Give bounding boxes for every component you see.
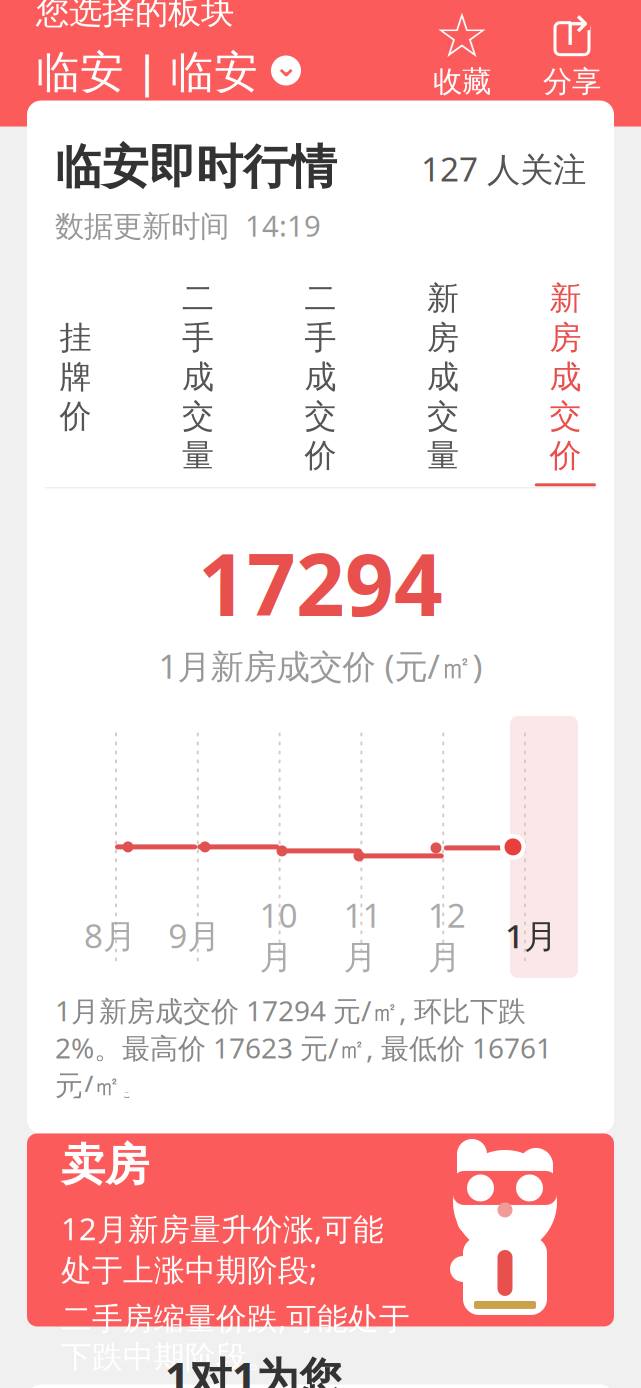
button[interactable]: 1对1为您找房 [27, 1384, 614, 1388]
staticText: 9月 [168, 913, 220, 957]
button[interactable]: 二手成交价 [290, 279, 351, 486]
button[interactable]: 临安 | 临安 [36, 41, 301, 100]
staticText: 二手房缩量价跌,可能处于下跌中期阶段。 [61, 1297, 410, 1376]
staticText: ‹ [34, 0, 52, 8]
staticText: 1月新房成交价 17294 元/㎡, 环比下跌 2%。最高价 17623 元/㎡… [55, 992, 552, 1103]
staticText: 新房成交量 [427, 279, 459, 475]
button[interactable]: ☆ [429, 15, 495, 100]
button[interactable]: 新房成交价 [535, 279, 596, 486]
staticText: 12月 [428, 893, 466, 978]
button[interactable]: 新房成交量 [412, 279, 473, 486]
staticText: 1月 [505, 913, 557, 957]
staticText: 1对1为您找房 [165, 1349, 342, 1388]
staticText: 17294 [198, 526, 443, 640]
button[interactable]: 挂牌价 [45, 318, 106, 447]
staticText: 127 人关注 [421, 146, 586, 191]
staticText: 行情不错，可以卖房 [61, 1084, 369, 1192]
staticText: 10月 [259, 893, 297, 978]
staticText: 临安 | 临安 [36, 41, 258, 100]
staticText: 新房成交价 [549, 279, 581, 475]
button[interactable]: 二手成交量 [167, 279, 229, 486]
staticText: 12月新房量升价涨,可能处于上涨中期阶段; [61, 1208, 384, 1289]
staticText: ↱ [560, 8, 594, 54]
staticText: 8月 [84, 913, 136, 957]
staticText: 1月新房成交价 (元/㎡) [158, 644, 482, 688]
staticText: 收藏 [433, 64, 491, 100]
staticText: 数据更新时间 14:19 [55, 206, 321, 245]
staticText: 二手成交价 [304, 279, 336, 475]
staticText: 二手成交量 [182, 279, 214, 475]
staticText: 分享 [543, 64, 601, 100]
staticText: ⌄ [274, 51, 297, 82]
staticText: ☆ [434, 1, 489, 70]
staticText: 临安即时行情 [55, 138, 337, 196]
staticText: 挂牌价 [60, 318, 92, 436]
staticText: 您选择的板块 [36, 0, 234, 32]
button[interactable]: ↱ [539, 15, 605, 100]
staticText: 11月 [344, 893, 382, 978]
